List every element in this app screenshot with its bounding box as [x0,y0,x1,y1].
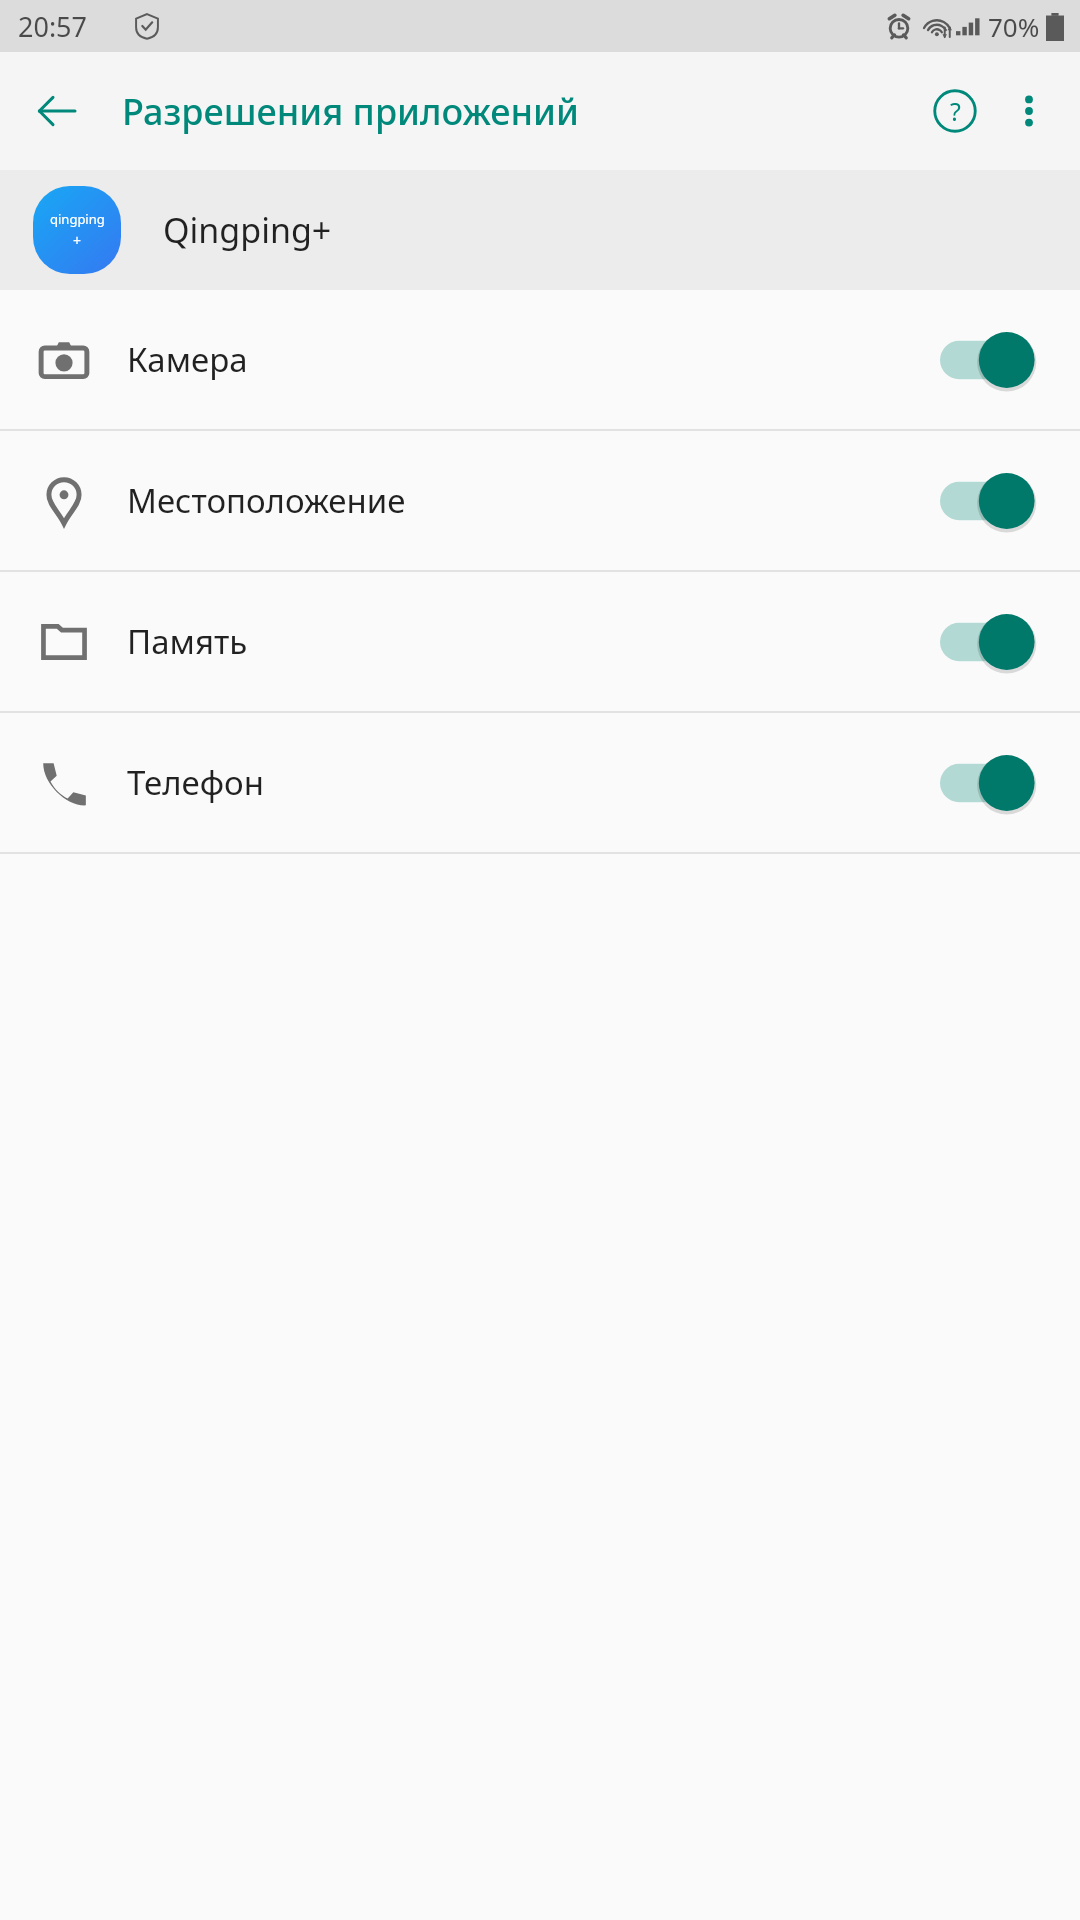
staticText: Камера [127,337,940,382]
button[interactable]: qingping [0,170,1080,290]
staticText: Qingping+ [163,207,332,253]
staticText: Память [127,619,940,664]
button[interactable]: Камера [0,290,1080,429]
button[interactable]: Телефон [0,713,1080,852]
staticText: + [73,231,82,250]
staticText: 70% [988,9,1040,44]
button[interactable]: Переключатель [940,329,1036,391]
staticText: 20:57 [18,8,88,45]
button[interactable]: Ещё [992,74,1066,148]
button[interactable]: Переключатель [940,611,1036,673]
button[interactable]: Память [0,572,1080,711]
button[interactable]: Назад [26,80,88,142]
staticText: qingping [50,210,105,228]
staticText: Телефон [127,760,940,805]
button[interactable]: Справка [918,74,992,148]
staticText: Разрешения приложений [122,87,579,136]
staticText: ? [950,94,961,128]
button[interactable]: Переключатель [940,752,1036,814]
button[interactable]: Местоположение [0,431,1080,570]
button[interactable]: Переключатель [940,470,1036,532]
staticText: Местоположение [127,478,940,523]
